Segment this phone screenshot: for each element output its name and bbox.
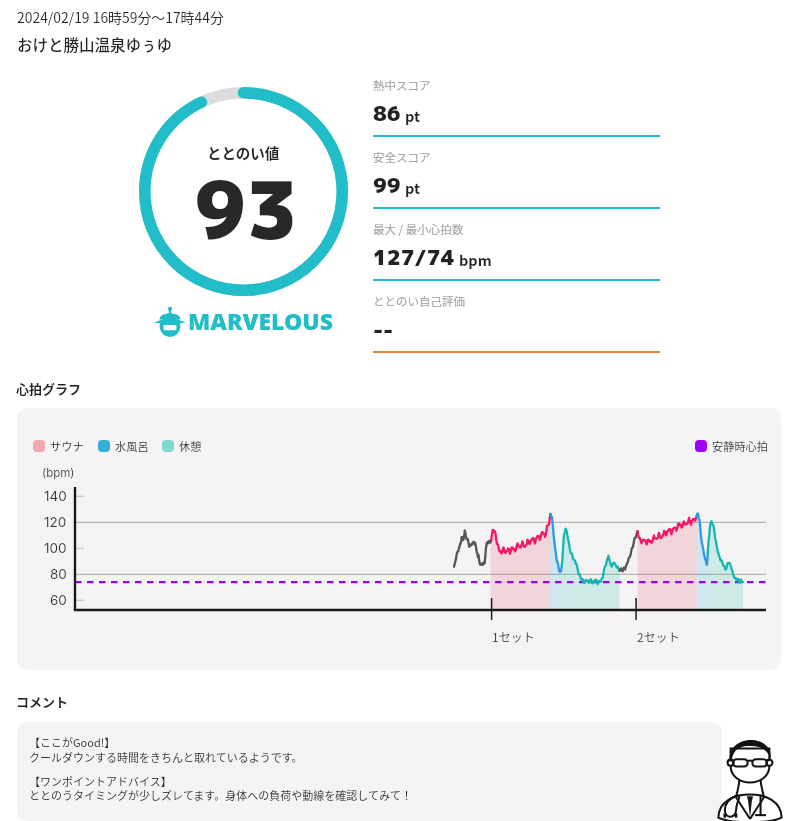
- staticText: ととのい自己評価: [373, 293, 465, 310]
- button[interactable]: 休憩: [162, 438, 202, 454]
- staticText: 2セット: [637, 628, 680, 645]
- staticText: 最大 / 最小心拍数: [373, 221, 464, 238]
- button[interactable]: 【ここがGood!】: [17, 722, 722, 821]
- staticText: 安全スコア: [373, 149, 431, 166]
- button[interactable]: ととのい自己評価: [373, 293, 660, 365]
- staticText: 水風呂: [115, 438, 149, 454]
- button[interactable]: 最大 / 最小心拍数: [373, 221, 660, 293]
- staticText: 心拍グラフ: [16, 379, 82, 398]
- staticText: pt: [405, 177, 421, 198]
- staticText: ととのうタイミングが少しズレてます。身体への負荷や動線を確認してみて！: [29, 787, 412, 803]
- button[interactable]: 安静時心拍: [695, 438, 768, 454]
- staticText: 60: [50, 592, 67, 608]
- staticText: 86: [373, 98, 401, 127]
- button[interactable]: サウナ: [33, 438, 84, 454]
- staticText: 安静時心拍: [712, 438, 768, 454]
- staticText: 休憩: [179, 438, 202, 454]
- staticText: 140: [44, 488, 67, 504]
- staticText: 80: [50, 566, 67, 582]
- staticText: 93: [194, 154, 299, 264]
- staticText: クールダウンする時間をきちんと取れているようです。: [29, 749, 303, 765]
- staticText: 120: [44, 514, 67, 530]
- other: Doctor avatar: [716, 733, 784, 819]
- other: Sauna rank icon: [154, 305, 186, 337]
- button[interactable]: 安全スコア: [373, 149, 660, 221]
- staticText: (bpm): [42, 466, 75, 480]
- button[interactable]: 熱中スコア: [373, 77, 660, 149]
- staticText: 100: [44, 540, 67, 556]
- staticText: サウナ: [50, 438, 84, 454]
- button[interactable]: ととのい値 93 MARVELOUS: [139, 87, 348, 296]
- staticText: 2024/02/19 16時59分〜17時44分: [17, 7, 224, 27]
- button[interactable]: 2024/02/19 16時59分〜17時44分: [17, 7, 224, 55]
- staticText: bpm: [459, 249, 492, 270]
- button[interactable]: 心拍グラフ: [17, 408, 781, 670]
- staticText: ととのい値: [207, 142, 280, 163]
- staticText: 【ワンポイントアドバイス】: [29, 773, 172, 789]
- staticText: 99: [373, 170, 401, 199]
- staticText: 127/74: [373, 242, 455, 271]
- staticText: pt: [405, 105, 421, 126]
- staticText: コメント: [16, 692, 69, 711]
- button[interactable]: 水風呂: [98, 438, 149, 454]
- staticText: --: [373, 314, 394, 343]
- staticText: おけと勝山温泉ゆぅゆ: [17, 33, 173, 55]
- staticText: 熱中スコア: [373, 77, 431, 94]
- staticText: 【ここがGood!】: [29, 734, 116, 750]
- staticText: 1セット: [492, 628, 535, 645]
- staticText: MARVELOUS: [188, 305, 334, 336]
